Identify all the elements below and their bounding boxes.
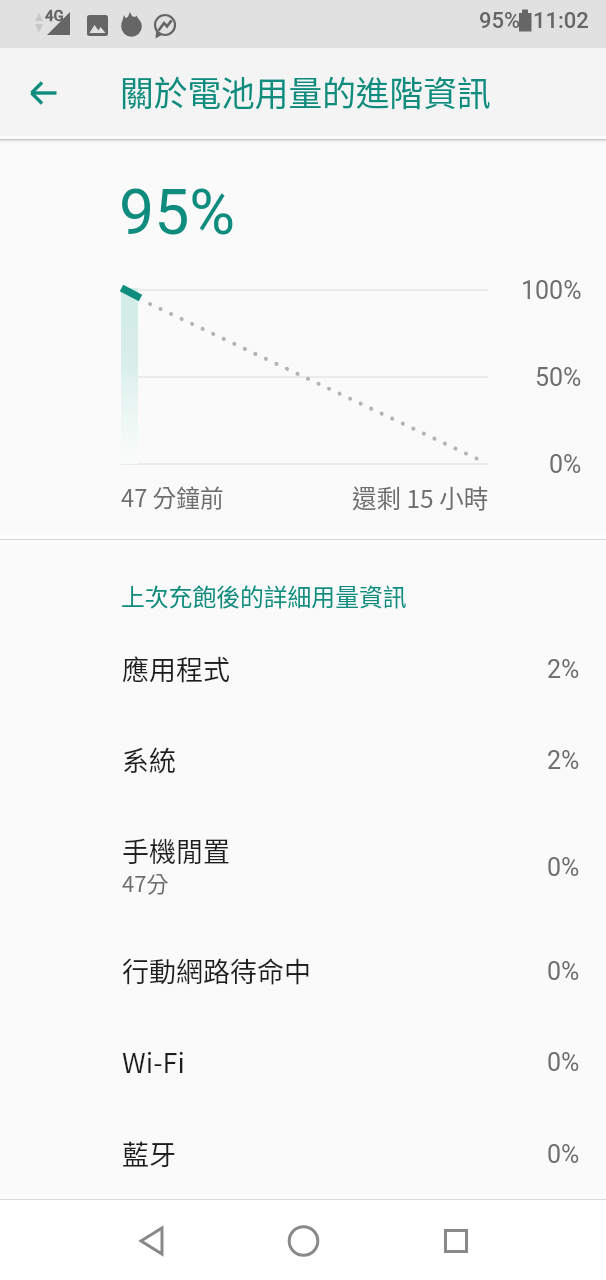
staticText: 0%	[547, 1140, 580, 1169]
button[interactable]: Home	[273, 1221, 333, 1261]
staticText: 藍牙	[122, 1134, 176, 1173]
staticText: 0%	[547, 1048, 580, 1077]
staticText: 行動網路待命中	[122, 951, 311, 990]
staticText: 100%	[521, 276, 582, 305]
button[interactable]: 藍牙	[0, 1108, 606, 1199]
button[interactable]: 應用程式	[0, 623, 606, 714]
staticText: 0%	[547, 853, 580, 882]
staticText: 上次充飽後的詳細用量資訊	[121, 578, 407, 612]
button[interactable]: Back	[20, 69, 68, 117]
staticText: 47 分鐘前	[121, 480, 224, 514]
staticText: 應用程式	[122, 649, 230, 688]
staticText: Wi-Fi	[122, 1042, 185, 1081]
staticText: 關於電池用量的進階資訊	[120, 67, 491, 116]
staticText: 手機閒置	[122, 831, 230, 870]
staticText: 2%	[547, 746, 580, 775]
staticText: 4G	[45, 7, 64, 25]
staticText: 95%	[119, 176, 236, 249]
button[interactable]: Wi-Fi	[0, 1016, 606, 1107]
staticText: 0%	[547, 957, 580, 986]
button[interactable]: Recents	[425, 1221, 485, 1261]
staticText: 11:02	[533, 8, 589, 34]
button[interactable]: 手機閒置	[0, 807, 606, 925]
staticText: 47分	[122, 866, 169, 898]
staticText: 95%	[479, 8, 521, 34]
staticText: 50%	[535, 363, 582, 392]
staticText: 0%	[549, 450, 582, 479]
staticText: 還剩 15 小時	[352, 480, 489, 515]
button[interactable]: Back	[121, 1221, 181, 1261]
staticText: 系統	[122, 740, 176, 779]
staticText: 2%	[547, 655, 580, 684]
button[interactable]: 系統	[0, 714, 606, 805]
button[interactable]: 行動網路待命中	[0, 925, 606, 1016]
